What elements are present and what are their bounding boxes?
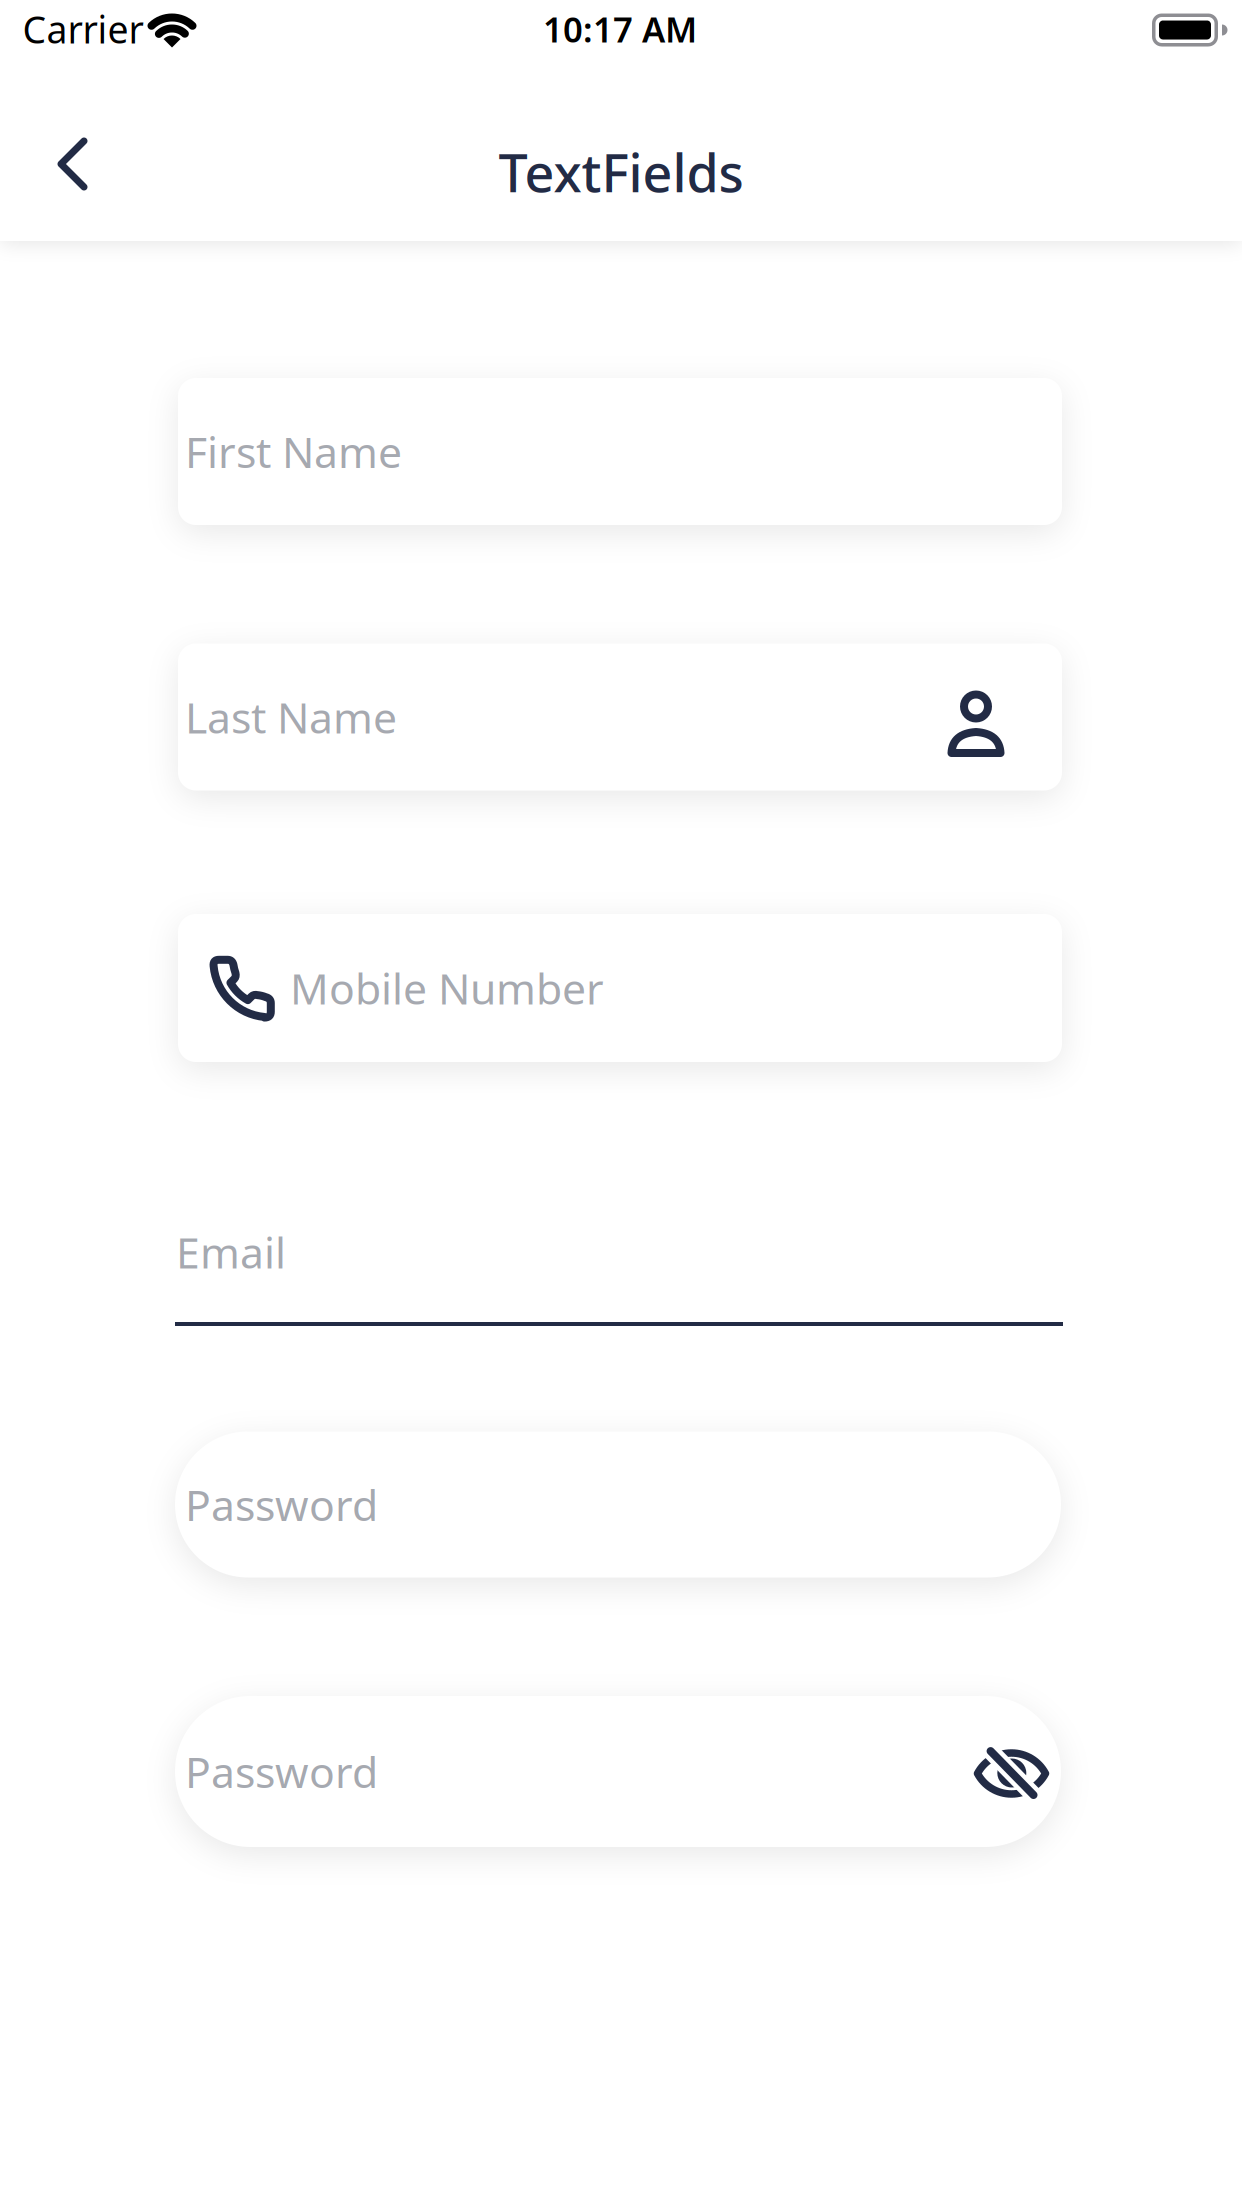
- button[interactable]: [973, 1745, 1051, 1803]
- button[interactable]: Last Name: [178, 643, 1062, 790]
- staticText: Mobile Number: [290, 960, 604, 1016]
- staticText: Last Name: [185, 689, 397, 745]
- button[interactable]: [50, 132, 94, 196]
- staticText: 10:17 AM: [543, 6, 697, 52]
- staticText: First Name: [185, 423, 402, 480]
- staticText: Password: [185, 1476, 378, 1533]
- staticText: Email: [176, 1224, 286, 1280]
- staticText: TextFields: [498, 137, 743, 207]
- staticText: Password: [185, 1743, 378, 1800]
- button[interactable]: Password: [175, 1431, 1061, 1577]
- button[interactable]: Password: [175, 1696, 1061, 1847]
- button[interactable]: Email: [175, 1180, 1063, 1326]
- button[interactable]: First Name: [178, 378, 1062, 525]
- staticText: Carrier: [22, 4, 143, 54]
- button[interactable]: Mobile Number: [178, 914, 1062, 1062]
